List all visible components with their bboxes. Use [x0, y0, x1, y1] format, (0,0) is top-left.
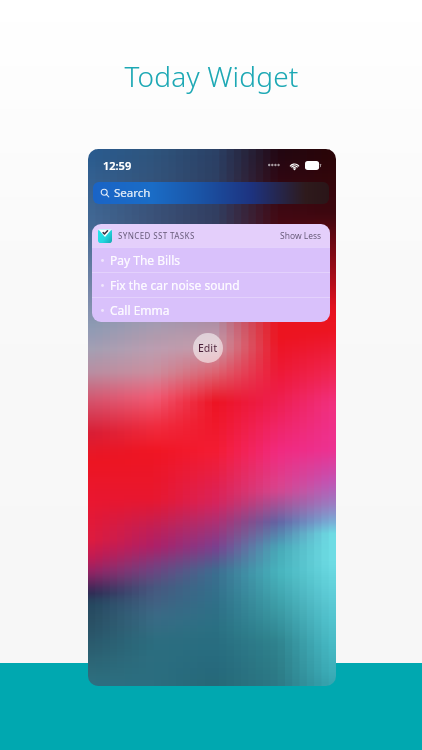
staticText: 12:59 [103, 158, 132, 173]
staticText: Edit [198, 341, 218, 355]
staticText: Today Widget [124, 57, 299, 95]
button[interactable]: Call Emma [92, 297, 330, 322]
staticText: Pay The Bills [110, 252, 181, 268]
staticText: Call Emma [110, 302, 170, 318]
button[interactable]: Pay The Bills [92, 247, 330, 272]
staticText: Search [114, 185, 151, 201]
staticText: Fix the car noise sound [110, 277, 240, 293]
button[interactable]: Search [93, 182, 329, 204]
staticText: SYNCED SST TASKS [118, 230, 195, 241]
staticText: Show Less [280, 230, 322, 242]
button[interactable]: Fix the car noise sound [92, 272, 330, 297]
button[interactable]: SYNCED SST TASKS [98, 224, 322, 247]
button[interactable]: Edit [193, 333, 223, 363]
